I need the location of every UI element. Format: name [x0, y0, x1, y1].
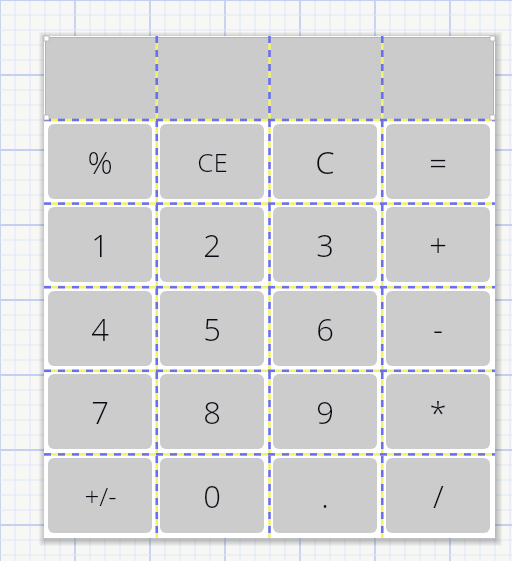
button[interactable]: -: [386, 291, 490, 366]
button[interactable]: 6: [273, 291, 377, 366]
button[interactable]: 0: [160, 458, 264, 533]
staticText: +: [429, 224, 447, 266]
staticText: .: [321, 475, 329, 517]
button[interactable]: 9: [273, 374, 377, 449]
button[interactable]: =: [386, 124, 490, 199]
button[interactable]: 7: [48, 374, 152, 449]
button[interactable]: /: [386, 458, 490, 533]
staticText: 0: [203, 475, 221, 517]
staticText: %: [87, 141, 113, 183]
button[interactable]: 1: [48, 207, 152, 282]
staticText: 4: [91, 308, 109, 350]
staticText: 2: [203, 224, 221, 266]
staticText: =: [429, 141, 447, 183]
button[interactable]: +: [386, 207, 490, 282]
button[interactable]: C: [273, 124, 377, 199]
staticText: 8: [203, 391, 221, 433]
staticText: 1: [91, 224, 109, 266]
button[interactable]: %: [48, 124, 152, 199]
staticText: +/-: [84, 478, 117, 513]
button[interactable]: 8: [160, 374, 264, 449]
staticText: 9: [316, 391, 334, 433]
staticText: *: [429, 391, 447, 433]
staticText: CE: [197, 144, 228, 179]
button[interactable]: 4: [48, 291, 152, 366]
staticText: 5: [203, 308, 221, 350]
button[interactable]: 3: [273, 207, 377, 282]
button[interactable]: CE: [160, 124, 264, 199]
staticText: C: [315, 141, 335, 183]
button[interactable]: .: [273, 458, 377, 533]
button[interactable]: 2: [160, 207, 264, 282]
staticText: -: [433, 308, 443, 350]
staticText: 6: [316, 308, 334, 350]
staticText: 7: [91, 391, 109, 433]
staticText: 3: [316, 224, 334, 266]
staticText: /: [433, 475, 444, 517]
button[interactable]: 5: [160, 291, 264, 366]
button[interactable]: +/-: [48, 458, 152, 533]
button[interactable]: *: [386, 374, 490, 449]
